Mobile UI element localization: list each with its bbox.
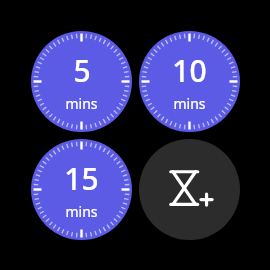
staticText: 5 — [73, 50, 91, 91]
staticText: 10 — [172, 50, 207, 91]
button[interactable]: 15 — [31, 139, 132, 240]
staticText: 15 — [64, 158, 99, 199]
staticText: mins — [65, 202, 98, 221]
staticText: mins — [65, 94, 98, 113]
button[interactable]: Add custom timer — [139, 139, 240, 240]
button[interactable]: 10 — [139, 31, 240, 132]
button[interactable]: 5 — [31, 31, 132, 132]
staticText: mins — [173, 94, 206, 113]
